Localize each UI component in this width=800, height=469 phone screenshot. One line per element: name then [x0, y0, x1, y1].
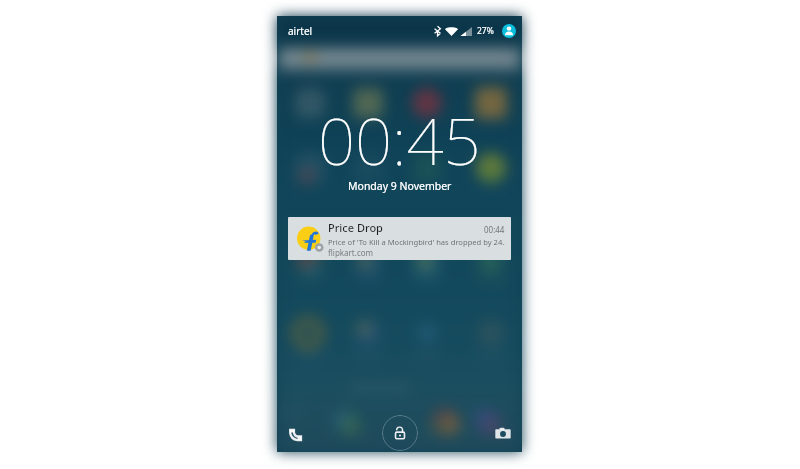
staticText: Price of 'To Kill a Mockingbird' has dro…	[328, 237, 505, 247]
staticText: Price Drop	[328, 220, 383, 235]
staticText: 00:45	[318, 96, 481, 185]
button[interactable]: Phone	[289, 426, 304, 441]
button[interactable]: Price Drop	[288, 217, 511, 260]
staticText: 00:44	[484, 224, 505, 235]
button[interactable]: Unlock	[382, 415, 418, 451]
staticText: airtel	[288, 24, 313, 38]
button[interactable]: User profile	[502, 24, 516, 38]
staticText: Monday 9 November	[348, 179, 452, 193]
staticText: 27%	[477, 25, 494, 37]
staticText: flipkart.com	[328, 247, 374, 258]
button[interactable]: Camera	[495, 425, 511, 441]
